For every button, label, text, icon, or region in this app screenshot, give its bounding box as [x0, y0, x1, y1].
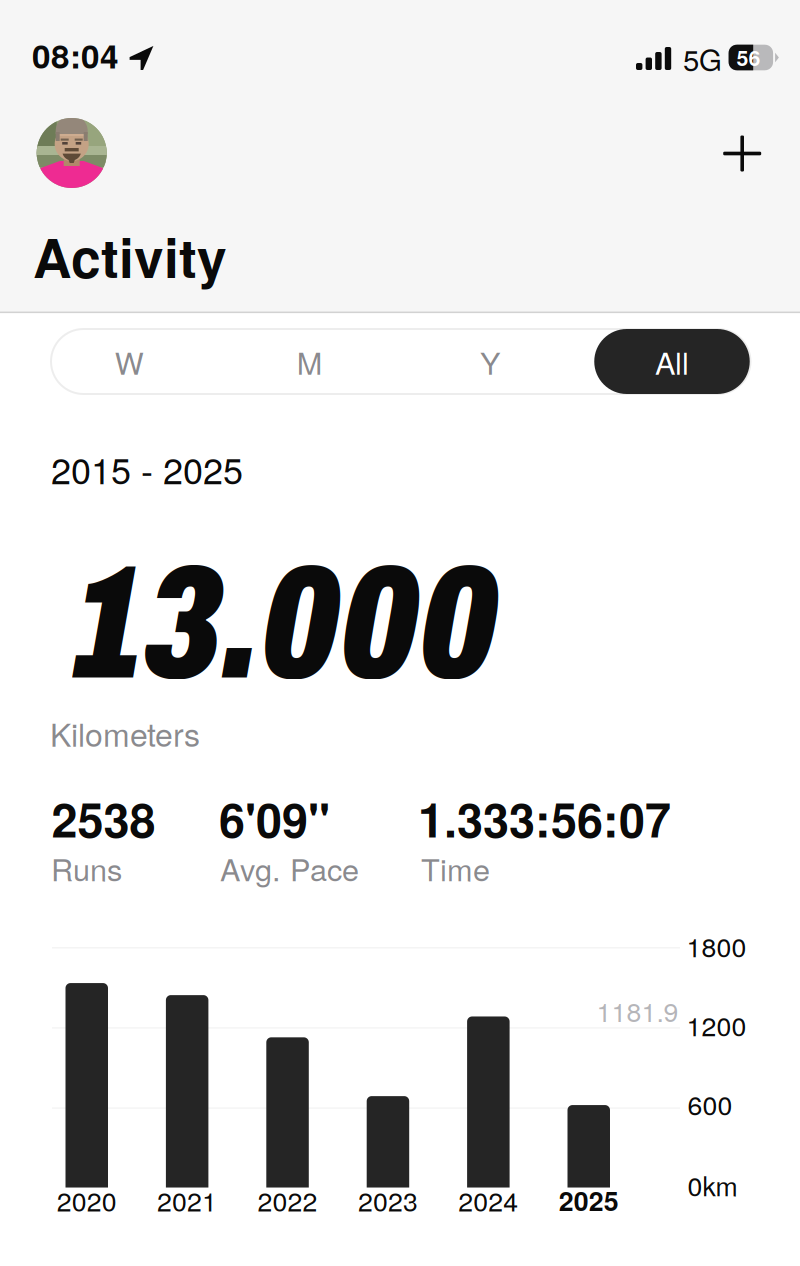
staticText: 2021: [157, 1181, 217, 1219]
staticText: Y: [480, 339, 500, 383]
staticText: M: [297, 339, 323, 383]
button[interactable]: Add activity: [723, 134, 761, 172]
staticText: 0km: [688, 1166, 738, 1204]
staticText: 600: [688, 1085, 733, 1123]
button[interactable]: M: [230, 329, 390, 394]
button[interactable]: Y: [410, 329, 570, 394]
staticText: 08:04: [32, 31, 119, 79]
button[interactable]: All: [594, 329, 750, 394]
staticText: Runs: [51, 846, 122, 890]
staticText: 56: [737, 42, 761, 72]
staticText: 2022: [257, 1181, 317, 1219]
staticText: 6'09'': [219, 785, 330, 852]
staticText: 2023: [358, 1181, 418, 1219]
staticText: 2015 - 2025: [51, 443, 243, 495]
staticText: Kilometers: [50, 710, 200, 756]
staticText: 5G: [683, 37, 722, 79]
staticText: All: [655, 339, 689, 383]
staticText: W: [115, 339, 144, 383]
staticText: Activity: [33, 218, 227, 294]
staticText: 2538: [51, 785, 155, 852]
staticText: 1800: [687, 927, 747, 965]
staticText: 2025: [559, 1181, 619, 1219]
staticText: Avg. Pace: [220, 846, 359, 890]
staticText: Time: [421, 846, 490, 890]
staticText: 13.000: [75, 537, 498, 711]
staticText: 2020: [57, 1181, 117, 1219]
staticText: 1.333:56:07: [418, 785, 671, 852]
staticText: 1200: [687, 1006, 747, 1044]
staticText: 1181.9: [596, 991, 678, 1030]
staticText: 2024: [458, 1181, 518, 1219]
button[interactable]: W: [49, 329, 209, 394]
button[interactable]: Profile: [37, 118, 107, 188]
